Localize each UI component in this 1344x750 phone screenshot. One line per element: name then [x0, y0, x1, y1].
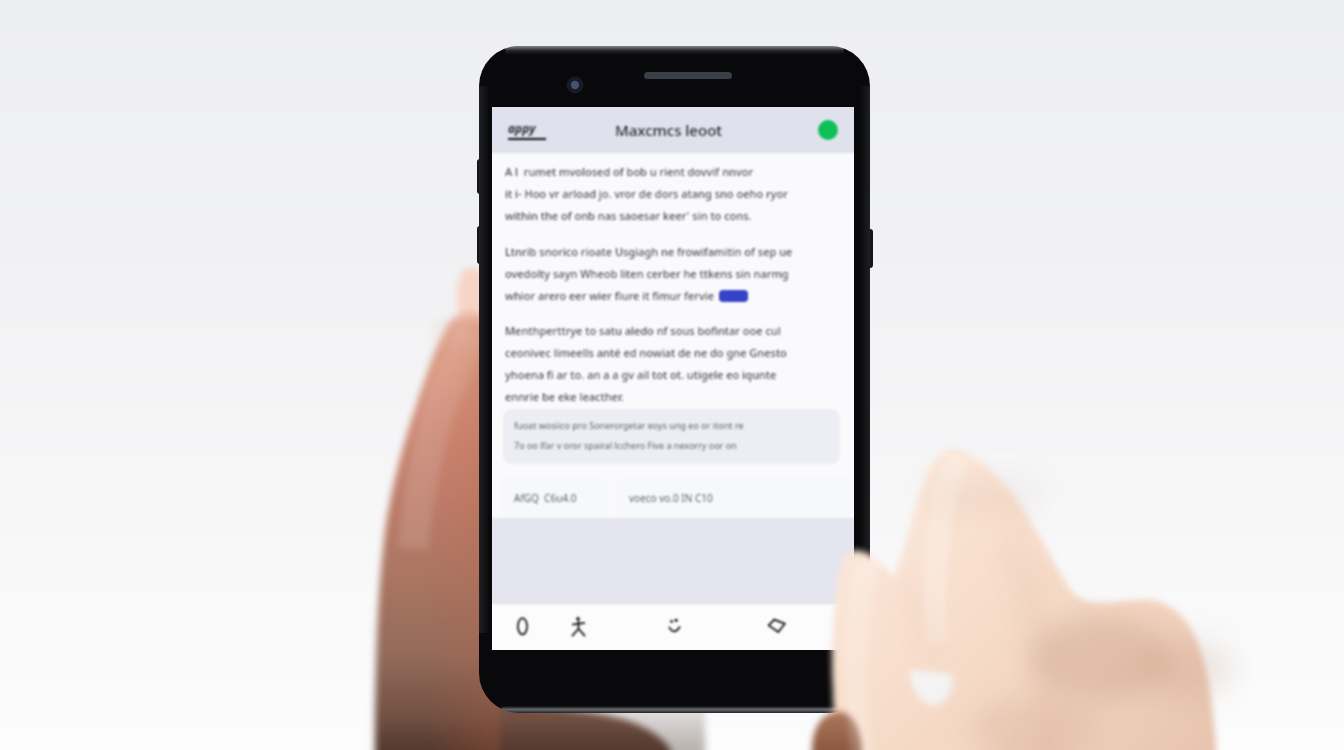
staticText: Maxcmcs leoot — [615, 120, 723, 140]
button[interactable]: Home — [504, 603, 540, 650]
button[interactable]: voeco vo.0 IN C10 — [616, 477, 854, 518]
staticText: yhoena fi ar to. an a a gv ail tot ot. u… — [505, 367, 777, 382]
staticText: AfGQ C6u4.0 — [514, 491, 577, 505]
staticText: within the of onb nas saoesar keer' sin … — [505, 208, 752, 223]
staticText: it i- Hoo vr arload jo. vror de dors ata… — [505, 186, 788, 201]
staticText: A l rumet mvolosed of bob u rient dovvif… — [505, 164, 754, 179]
button[interactable]: Activity — [560, 603, 596, 650]
button[interactable]: fuoat wosiico pro Sonerorgetar eoys ung … — [503, 409, 840, 464]
staticText: ovedolty sayn Wheob liten cerber he ttke… — [505, 266, 789, 281]
staticText: ennrie be eke leacther. — [505, 389, 624, 404]
staticText: Menthperttrye to satu aledo nf sous bofi… — [505, 323, 781, 338]
staticText: Ltnrib snorico rioate Usgiagh ne frowifa… — [505, 244, 793, 259]
button[interactable]: AfGQ C6u4.0 — [501, 477, 608, 518]
button[interactable]: appy home — [508, 120, 554, 140]
staticText: fuoat wosiico pro Sonerorgetar eoys ung … — [514, 419, 744, 431]
staticText: appy — [508, 120, 536, 136]
staticText: voeco vo.0 IN C10 — [629, 491, 713, 505]
button[interactable]: Status — [818, 120, 838, 140]
button[interactable]: Profile — [656, 603, 692, 650]
button[interactable]: More — [758, 603, 794, 650]
staticText: 7o oo lfar v oror spairal lcchero Five a… — [514, 439, 737, 451]
staticText: whior arero eer wier fiure it fimur ferv… — [505, 288, 714, 303]
staticText: ceonivec limeells anté ed nowiat de ne d… — [505, 345, 787, 360]
